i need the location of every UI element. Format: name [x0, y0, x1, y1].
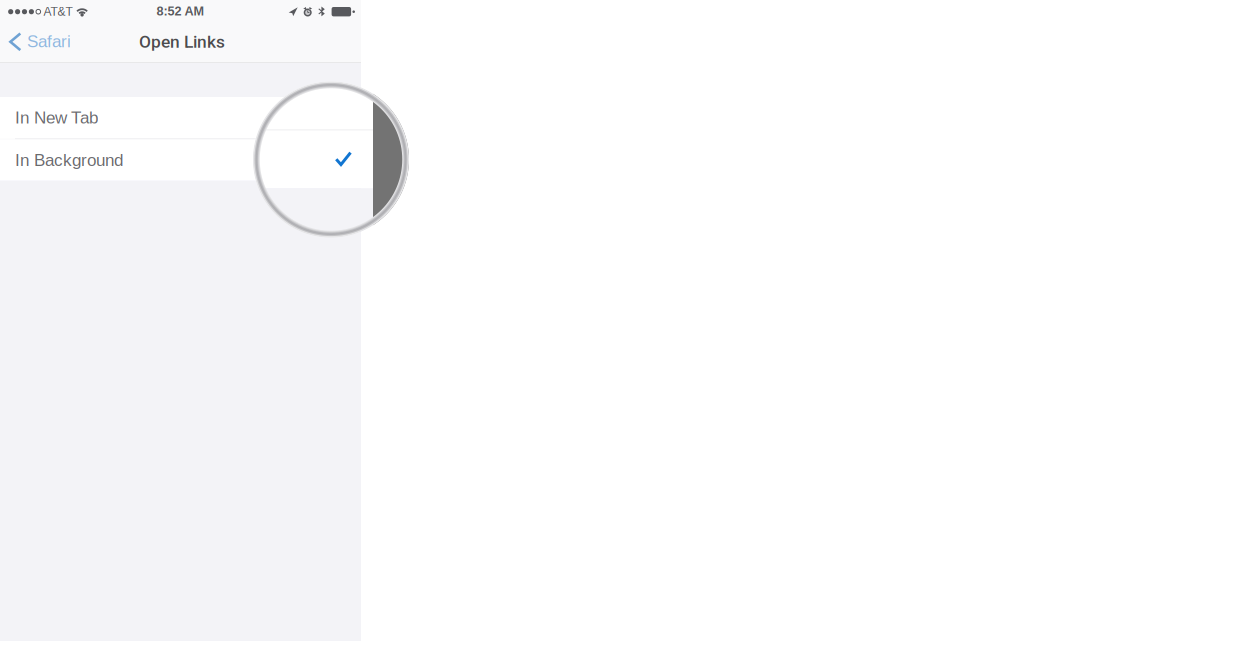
staticText: In New Tab	[15, 108, 98, 127]
staticText: Safari	[27, 32, 71, 51]
staticText: 8:52 AM	[156, 4, 204, 18]
staticText: Open Links	[139, 32, 225, 52]
button[interactable]: Back to Safari	[0, 23, 81, 61]
button[interactable]: In Background	[0, 139, 361, 181]
staticText: In Background	[15, 150, 123, 170]
button[interactable]: In New Tab	[0, 97, 361, 138]
staticText: AT&T	[43, 5, 72, 18]
